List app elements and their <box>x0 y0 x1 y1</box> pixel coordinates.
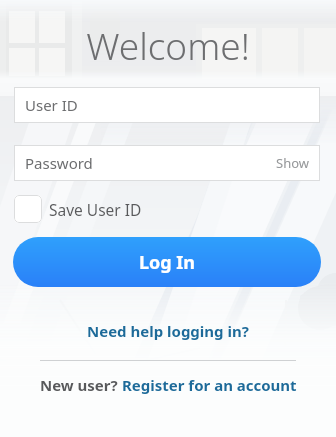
staticText: Need help logging in? <box>87 321 249 341</box>
button[interactable]: Password <box>14 145 320 181</box>
staticText: Password <box>25 153 265 173</box>
button[interactable]: User ID <box>14 87 320 123</box>
staticText: Log In <box>139 250 196 275</box>
button[interactable]: Register for an account <box>122 375 297 395</box>
button[interactable]: Log In <box>13 237 321 287</box>
button[interactable]: Save User ID checkbox <box>14 195 142 223</box>
staticText: Register for an account <box>122 375 297 395</box>
button[interactable]: Need help logging in? <box>0 318 336 344</box>
other: Save User ID checkbox <box>14 195 42 223</box>
button[interactable]: Show <box>265 145 320 181</box>
staticText: Welcome! <box>0 20 336 70</box>
staticText: Show <box>276 154 309 172</box>
staticText: New user? <box>40 375 122 395</box>
staticText: Save User ID <box>49 199 142 220</box>
staticText: User ID <box>25 95 78 115</box>
